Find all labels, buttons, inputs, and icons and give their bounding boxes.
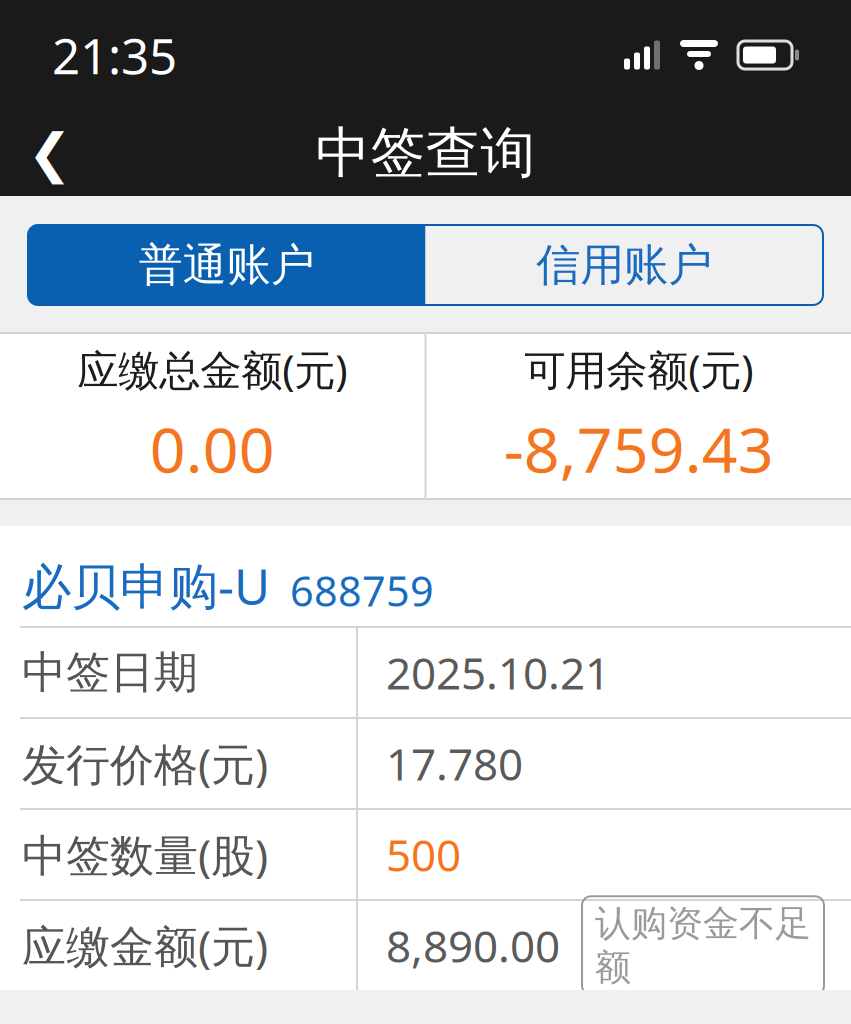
- staticText: 500: [386, 825, 461, 884]
- staticText: -8,759.43: [504, 407, 774, 490]
- button[interactable]: 普通账户: [28, 225, 425, 305]
- staticText: 688759: [290, 563, 434, 618]
- staticText: 中签日期: [22, 645, 198, 699]
- staticText: 0.00: [150, 407, 275, 490]
- staticText: 8,890.00: [386, 916, 560, 975]
- staticText: 中签数量(股): [22, 825, 268, 884]
- staticText: 发行价格(元): [22, 734, 268, 793]
- staticText: 17.780: [386, 734, 523, 793]
- staticText: ❮: [27, 123, 72, 183]
- button[interactable]: 信用账户: [425, 225, 823, 305]
- button[interactable]: 返回: [0, 110, 100, 196]
- staticText: 可用余额(元): [524, 342, 753, 397]
- staticText: 认购资金不足额: [595, 901, 811, 990]
- staticText: 应缴总金额(元): [77, 342, 347, 397]
- staticText: 必贝申购-U: [22, 552, 270, 618]
- staticText: 普通账户: [139, 238, 315, 292]
- staticText: 中签查询: [315, 119, 535, 186]
- staticText: 2025.10.21: [386, 643, 610, 702]
- staticText: 信用账户: [536, 238, 712, 292]
- staticText: 应缴金额(元): [22, 916, 268, 975]
- staticText: 21:35: [52, 22, 177, 88]
